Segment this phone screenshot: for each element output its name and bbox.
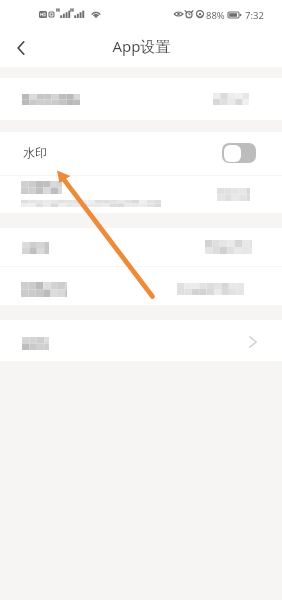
staticText: 水印: [23, 145, 47, 160]
button[interactable]: More: [0, 320, 282, 361]
staticText: App设置: [112, 36, 171, 56]
button[interactable]: 水印: [0, 132, 282, 213]
button[interactable]: Back: [6, 33, 36, 63]
button[interactable]: Watermark toggle: [222, 143, 256, 163]
button[interactable]: [0, 228, 282, 305]
button[interactable]: [0, 78, 282, 120]
other: More: [245, 334, 261, 350]
staticText: 7:32: [245, 9, 264, 22]
staticText: 88%: [206, 9, 225, 22]
